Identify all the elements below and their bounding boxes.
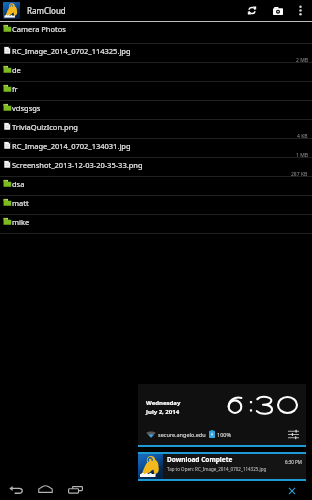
button[interactable]: Screenshot_2013-12-03-20-35-33.png (0, 158, 312, 177)
staticText: 287 KB (291, 171, 308, 176)
button[interactable]: Camera (265, 0, 291, 21)
staticText: RC_Image_2014_0702_134031.jpg (12, 141, 131, 151)
staticText: secure.angelo.edu (158, 431, 206, 438)
staticText: Wednesday (146, 399, 181, 407)
staticText: fr (12, 84, 18, 94)
button[interactable]: More options (291, 0, 309, 21)
button[interactable]: RC_Image_2014_0702_114325.jpg (0, 44, 312, 63)
staticText: RamCloud (27, 5, 66, 16)
button[interactable]: Recents (64, 478, 87, 500)
staticText: vdsgsgs (12, 103, 41, 113)
staticText: 100% (217, 431, 232, 438)
button[interactable]: de (0, 63, 312, 82)
staticText: dsa (12, 179, 25, 189)
button[interactable]: Camera Photos (0, 22, 312, 44)
staticText: Screenshot_2013-12-03-20-35-33.png (12, 160, 143, 170)
staticText: 1 MB (296, 152, 308, 157)
staticText: 4 KB (297, 133, 308, 138)
staticText: de (12, 65, 21, 75)
button[interactable]: RC_Image_2014_0702_134031.jpg (0, 139, 312, 158)
staticText: mike (12, 217, 30, 227)
button[interactable]: mike (0, 215, 312, 234)
button[interactable]: vdsgsgs (0, 101, 312, 120)
staticText: RC_Image_2014_0702_114325.jpg (12, 46, 131, 56)
button[interactable]: dsa (0, 177, 312, 196)
button[interactable]: Home (34, 478, 57, 500)
staticText: 2 MB (296, 57, 308, 62)
button[interactable]: TriviaQuizIcon.png (0, 120, 312, 139)
staticText: Camera Photos (12, 24, 66, 34)
staticText: TriviaQuizIcon.png (12, 122, 78, 132)
button[interactable]: Download Complete (138, 452, 306, 481)
button[interactable]: fr (0, 82, 312, 101)
button[interactable]: Dismiss all notifications (285, 484, 299, 498)
button[interactable]: matt (0, 196, 312, 215)
staticText: matt (12, 198, 29, 208)
staticText: 6:30 PM (285, 459, 302, 465)
staticText: July 2, 2014 (146, 408, 180, 416)
staticText: Download Complete (167, 455, 233, 464)
button[interactable]: Back (4, 478, 27, 500)
staticText: Tap to Open: RC_Image_2014_0702_114325.j… (167, 466, 267, 472)
button[interactable]: Quick settings (287, 428, 300, 440)
button[interactable]: Refresh (239, 0, 265, 21)
